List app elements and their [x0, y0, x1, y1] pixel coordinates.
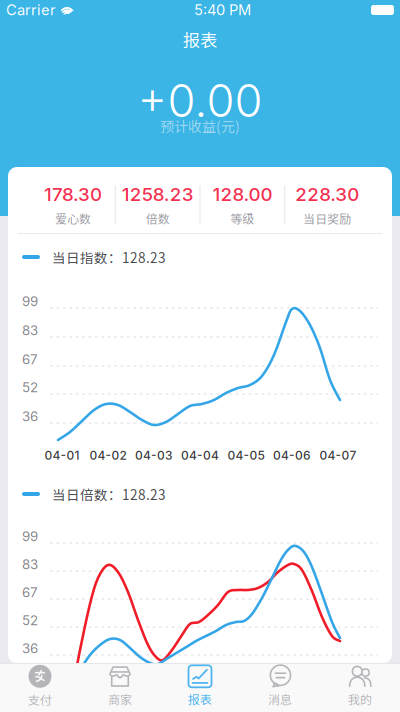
staticText: 报表: [188, 690, 212, 708]
staticText: 228.30: [295, 183, 359, 206]
staticText: Carrier: [6, 1, 56, 19]
staticText: 报表: [183, 27, 217, 52]
staticText: 83: [22, 556, 38, 572]
staticText: 1258.23: [122, 183, 194, 206]
button[interactable]: 消息: [240, 663, 320, 712]
staticText: 商家: [108, 690, 132, 708]
staticText: 04-06: [273, 448, 311, 463]
staticText: +0.00: [137, 73, 262, 128]
button[interactable]: 商家: [80, 663, 160, 712]
staticText: 83: [22, 322, 38, 338]
staticText: 99: [22, 528, 38, 544]
staticText: 36: [22, 640, 38, 656]
staticText: 04-01: [44, 448, 79, 463]
button[interactable]: 我的: [320, 663, 400, 712]
staticText: 04-02: [89, 448, 126, 463]
staticText: 67: [22, 351, 38, 367]
staticText: 04-05: [227, 448, 264, 463]
staticText: 爱心数: [55, 210, 91, 227]
staticText: 当日奖励: [303, 210, 351, 227]
staticText: 128.00: [212, 183, 272, 206]
staticText: 预计收益(元): [160, 116, 240, 136]
staticText: 36: [22, 408, 38, 424]
staticText: 178.30: [44, 183, 102, 206]
button[interactable]: 支付: [0, 663, 80, 712]
staticText: 04-07: [319, 448, 356, 463]
staticText: 5:40 PM: [194, 1, 251, 19]
button[interactable]: 报表: [160, 663, 240, 712]
staticText: 当日指数：128.23: [52, 247, 166, 267]
staticText: 倍数: [146, 210, 170, 227]
staticText: 52: [22, 612, 38, 628]
staticText: 等级: [230, 210, 254, 227]
staticText: 04-04: [181, 448, 219, 463]
staticText: 消息: [268, 690, 292, 708]
staticText: 支付: [28, 691, 52, 708]
staticText: 99: [22, 293, 38, 309]
staticText: 当日倍数：128.23: [52, 484, 166, 504]
staticText: 04-03: [135, 448, 173, 463]
staticText: 我的: [348, 690, 372, 708]
staticText: 67: [22, 584, 38, 600]
staticText: 52: [22, 379, 38, 395]
